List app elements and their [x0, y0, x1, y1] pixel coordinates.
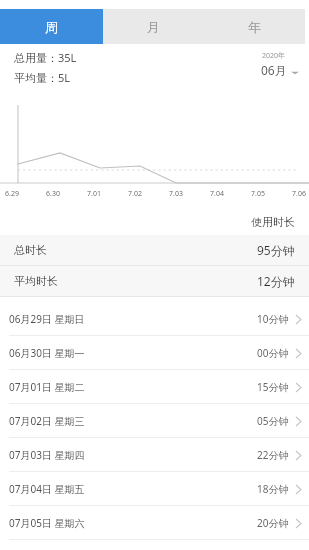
staticText: 06月30日 星期一	[9, 346, 85, 360]
button[interactable]: 周	[0, 9, 103, 44]
staticText: 06月	[261, 62, 287, 78]
button[interactable]: 06月29日 星期日	[0, 302, 309, 335]
staticText: 年	[248, 19, 261, 35]
staticText: 07月03日 星期四	[9, 448, 85, 462]
staticText: 7.02	[128, 189, 142, 199]
button[interactable]: 07月04日 星期五	[0, 472, 309, 505]
staticText: 总用量：35L	[14, 50, 77, 65]
staticText: 平均时长	[14, 274, 58, 288]
staticText: 07月02日 星期三	[9, 414, 85, 428]
staticText: 05分钟	[257, 414, 289, 428]
button[interactable]: 06月30日 星期一	[0, 336, 309, 369]
staticText: 15分钟	[257, 380, 289, 394]
staticText: 18分钟	[257, 482, 289, 496]
staticText: 6.30	[46, 189, 60, 199]
staticText: 00分钟	[257, 346, 289, 360]
staticText: 7.05	[251, 189, 265, 199]
staticText: 10分钟	[257, 312, 289, 326]
staticText: 07月04日 星期五	[9, 482, 85, 496]
staticText: 6.29	[5, 189, 19, 199]
staticText: 7.03	[169, 189, 183, 199]
button[interactable]: 07月02日 星期三	[0, 404, 309, 437]
staticText: 2020年	[262, 51, 286, 61]
staticText: 平均量：5L	[14, 70, 71, 85]
staticText: 95分钟	[257, 242, 295, 258]
staticText: 07月05日 星期六	[9, 516, 85, 530]
staticText: 总时长	[14, 243, 47, 257]
button[interactable]: 07月01日 星期二	[0, 370, 309, 403]
staticText: 使用时长	[251, 215, 295, 229]
staticText: 7.06	[292, 189, 306, 199]
button[interactable]: 2020年	[261, 51, 299, 78]
button[interactable]: 月	[103, 9, 204, 44]
button[interactable]: 总时长	[0, 235, 309, 265]
button[interactable]: 07月03日 星期四	[0, 438, 309, 471]
staticText: 月	[147, 19, 160, 35]
staticText: 22分钟	[257, 448, 289, 462]
staticText: 20分钟	[257, 516, 289, 530]
staticText: 07月01日 星期二	[9, 380, 85, 394]
staticText: 06月29日 星期日	[9, 312, 85, 326]
button[interactable]: 07月05日 星期六	[0, 506, 309, 539]
button[interactable]: 年	[204, 9, 305, 44]
staticText: 12分钟	[257, 273, 295, 289]
staticText: 7.01	[87, 189, 101, 199]
staticText: 7.04	[210, 189, 224, 199]
button[interactable]: 平均时长	[0, 266, 309, 296]
staticText: 周	[45, 19, 58, 35]
